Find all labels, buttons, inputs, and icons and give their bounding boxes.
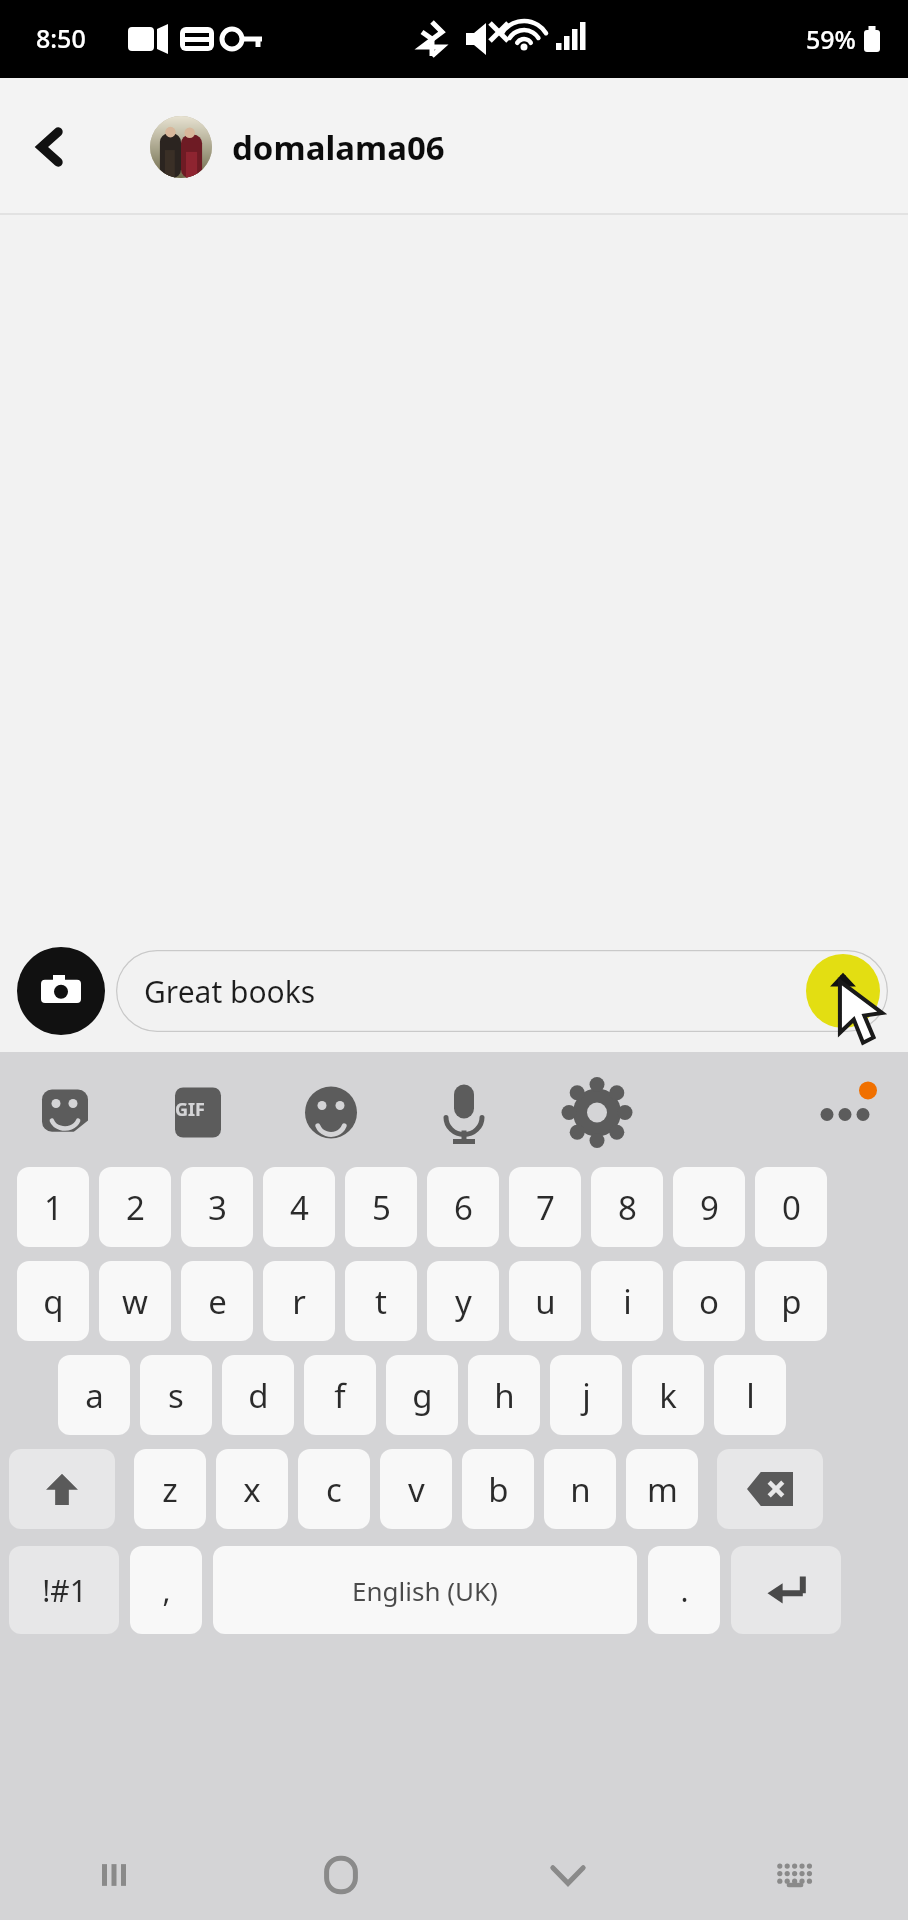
staticText: q (43, 1279, 64, 1324)
staticText: 59% (806, 22, 856, 56)
button[interactable]: g (386, 1355, 458, 1435)
button[interactable]: y (427, 1261, 499, 1341)
button[interactable]: v (380, 1449, 452, 1529)
button[interactable]: GIF (72, 1079, 126, 1133)
button[interactable]: l (714, 1355, 786, 1435)
staticText: s (168, 1373, 184, 1418)
button[interactable]: 3 (181, 1167, 253, 1247)
button[interactable]: q (17, 1261, 89, 1341)
button[interactable]: Backspace (717, 1449, 823, 1529)
staticText: . (680, 1570, 689, 1611)
button[interactable]: Emoji (138, 1079, 192, 1133)
button[interactable]: t (345, 1261, 417, 1341)
button[interactable]: Change keyboard (681, 1830, 908, 1920)
button[interactable]: More (338, 1079, 392, 1133)
staticText: 3 (208, 1185, 227, 1230)
staticText: GIF (175, 1097, 205, 1122)
button[interactable]: !#1 (9, 1546, 119, 1634)
button[interactable]: . (648, 1546, 720, 1634)
button[interactable]: Send (806, 954, 880, 1028)
staticText: 0 (782, 1185, 801, 1230)
staticText: 7 (536, 1185, 555, 1230)
button[interactable]: u (509, 1261, 581, 1341)
button[interactable]: Home (227, 1830, 454, 1920)
button[interactable]: r (263, 1261, 335, 1341)
staticText: v (408, 1467, 425, 1512)
button[interactable]: w (99, 1261, 171, 1341)
button[interactable]: Shift (9, 1449, 115, 1529)
button[interactable]: 2 (99, 1167, 171, 1247)
button[interactable]: a (58, 1355, 130, 1435)
staticText: j (582, 1373, 591, 1418)
staticText: domalama06 (232, 125, 445, 170)
staticText: 6 (454, 1185, 473, 1230)
button[interactable]: p (755, 1261, 827, 1341)
button[interactable]: z (134, 1449, 206, 1529)
button[interactable]: o (673, 1261, 745, 1341)
button[interactable]: Great books (116, 950, 888, 1032)
button[interactable]: Settings (271, 1079, 325, 1133)
button[interactable]: m (626, 1449, 698, 1529)
button[interactable]: n (544, 1449, 616, 1529)
button[interactable]: Enter (731, 1546, 841, 1634)
button[interactable]: 1 (17, 1167, 89, 1247)
staticText: f (334, 1373, 346, 1418)
button[interactable]: d (222, 1355, 294, 1435)
staticText: 8:50 (36, 21, 86, 55)
button[interactable]: 7 (509, 1167, 581, 1247)
staticText: a (85, 1373, 104, 1418)
staticText: x (243, 1467, 261, 1512)
staticText: English (UK) (352, 1573, 498, 1608)
button[interactable]: h (468, 1355, 540, 1435)
staticText: o (699, 1279, 719, 1324)
button[interactable]: e (181, 1261, 253, 1341)
staticText: n (570, 1467, 591, 1512)
staticText: y (455, 1279, 472, 1324)
button[interactable]: x (216, 1449, 288, 1529)
staticText: d (248, 1373, 269, 1418)
button[interactable]: 4 (263, 1167, 335, 1247)
staticText: i (623, 1279, 632, 1324)
staticText: p (781, 1279, 802, 1324)
staticText: w (122, 1279, 148, 1324)
staticText: 2 (126, 1185, 145, 1230)
staticText: u (535, 1279, 556, 1324)
button[interactable]: s (140, 1355, 212, 1435)
button[interactable]: c (298, 1449, 370, 1529)
staticText: 5 (372, 1185, 391, 1230)
staticText: g (412, 1373, 433, 1418)
button[interactable]: 8 (591, 1167, 663, 1247)
button[interactable]: Back (14, 110, 88, 184)
button[interactable]: English (UK) (213, 1546, 637, 1634)
button[interactable]: Camera (17, 947, 105, 1035)
button[interactable]: b (462, 1449, 534, 1529)
staticText: e (208, 1279, 227, 1324)
staticText: r (292, 1279, 306, 1324)
staticText: k (659, 1373, 677, 1418)
button[interactable]: Recents (0, 1830, 227, 1920)
staticText: l (746, 1373, 755, 1418)
staticText: h (494, 1373, 515, 1418)
staticText: 1 (44, 1185, 63, 1230)
staticText: Great books (144, 971, 316, 1012)
button[interactable]: 6 (427, 1167, 499, 1247)
staticText: t (375, 1279, 387, 1324)
button[interactable]: 9 (673, 1167, 745, 1247)
button[interactable]: , (130, 1546, 202, 1634)
staticText: , (162, 1570, 171, 1611)
button[interactable]: Voice input (205, 1079, 259, 1133)
staticText: z (162, 1467, 178, 1512)
button[interactable]: i (591, 1261, 663, 1341)
staticText: 4 (290, 1185, 309, 1230)
staticText: b (488, 1467, 509, 1512)
button[interactable]: 5 (345, 1167, 417, 1247)
button[interactable]: Stickers (5, 1079, 59, 1133)
button[interactable]: Hide keyboard (454, 1830, 681, 1920)
button[interactable]: More options (395, 1079, 449, 1133)
staticText: m (647, 1467, 678, 1512)
button[interactable]: 0 (755, 1167, 827, 1247)
button[interactable]: j (550, 1355, 622, 1435)
button[interactable]: domalama06 (150, 116, 445, 178)
button[interactable]: f (304, 1355, 376, 1435)
button[interactable]: k (632, 1355, 704, 1435)
